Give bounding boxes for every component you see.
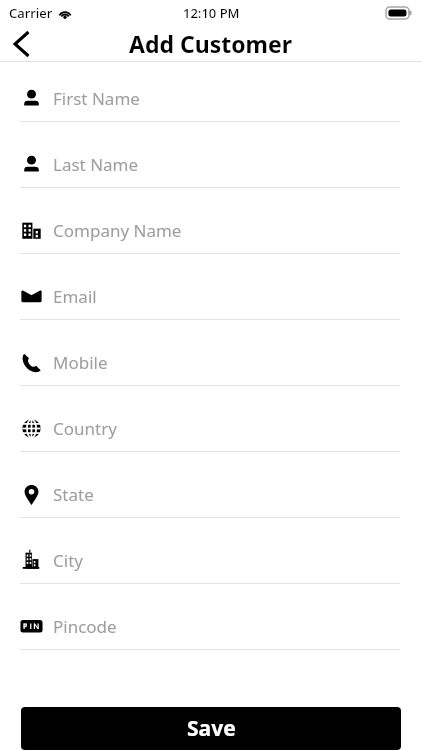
staticText: Save <box>187 714 236 743</box>
button[interactable]: City <box>0 538 422 604</box>
staticText: 12:10 PM <box>183 4 240 22</box>
button[interactable]: Mobile <box>0 340 422 406</box>
button[interactable]: Email <box>0 274 422 340</box>
staticText: State <box>53 483 94 506</box>
button[interactable]: Back <box>0 26 44 61</box>
staticText: Email <box>53 285 97 308</box>
button[interactable]: Pincode <box>0 604 422 670</box>
staticText: First Name <box>53 87 140 110</box>
button[interactable]: Last Name <box>0 142 422 208</box>
staticText: Carrier <box>9 4 53 22</box>
staticText: Last Name <box>53 153 139 176</box>
staticText: Add Customer <box>129 28 293 59</box>
button[interactable]: Country <box>0 406 422 472</box>
button[interactable]: Save <box>21 707 401 750</box>
staticText: City <box>53 549 83 572</box>
button[interactable]: Company Name <box>0 208 422 274</box>
button[interactable]: First Name <box>0 76 422 142</box>
staticText: Country <box>53 417 117 440</box>
staticText: Company Name <box>53 219 182 242</box>
button[interactable]: State <box>0 472 422 538</box>
staticText: Mobile <box>53 351 108 374</box>
staticText: Pincode <box>53 615 117 638</box>
